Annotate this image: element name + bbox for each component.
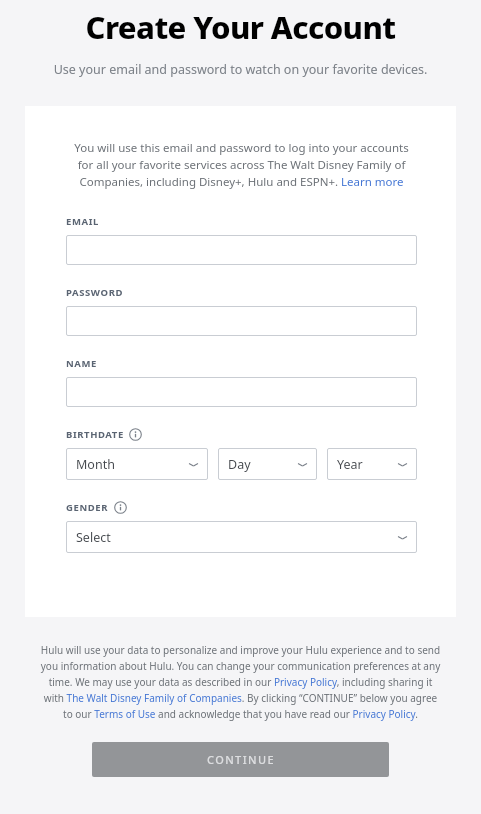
staticText: You will use this email and password to … — [66, 140, 417, 190]
button[interactable]: CONTINUE — [92, 742, 389, 777]
button[interactable]: More information about BIRTHDATE — [129, 428, 142, 441]
button[interactable]: More information about GENDER — [114, 501, 127, 514]
staticText: Select — [76, 529, 111, 546]
staticText: NAME — [66, 357, 97, 370]
button[interactable] — [66, 306, 417, 336]
staticText: PASSWORD — [66, 286, 124, 299]
staticText: GENDER — [66, 501, 109, 514]
staticText: BIRTHDATE — [66, 428, 124, 441]
staticText: Month — [76, 456, 115, 473]
staticText: CONTINUE — [207, 752, 275, 767]
button[interactable] — [66, 235, 417, 265]
staticText: Create Your Account — [0, 6, 481, 48]
staticText: Use your email and password to watch on … — [0, 61, 481, 78]
button[interactable]: Select — [66, 521, 417, 553]
button[interactable] — [66, 377, 417, 407]
staticText: Hulu will use your data to personalize a… — [38, 643, 443, 720]
button[interactable]: Day — [218, 448, 317, 480]
staticText: EMAIL — [66, 215, 99, 228]
button[interactable]: Year — [327, 448, 417, 480]
staticText: Day — [228, 456, 251, 473]
button[interactable]: Month — [66, 448, 208, 480]
staticText: Year — [337, 456, 363, 473]
